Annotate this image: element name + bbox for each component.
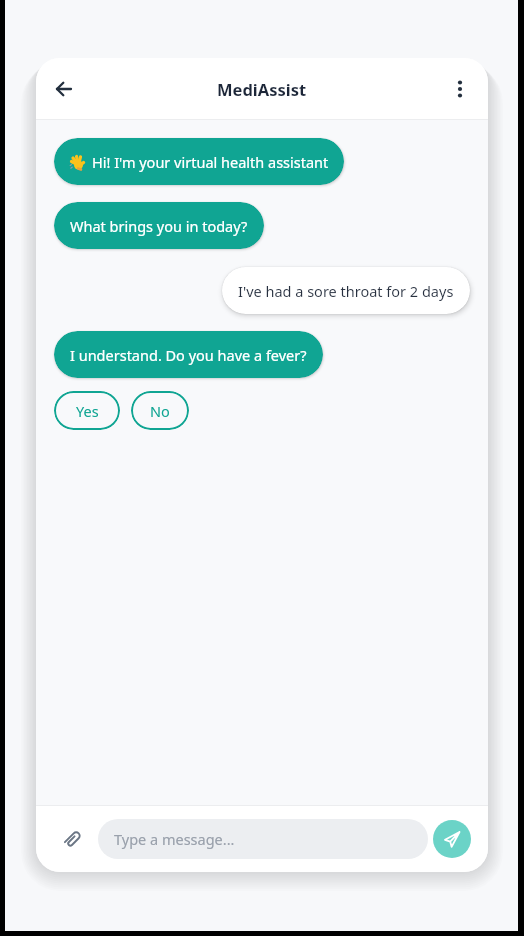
button[interactable]	[433, 820, 471, 858]
staticText: Type a message...	[114, 829, 235, 849]
button[interactable]: I've had a sore throat for 2 days	[222, 267, 470, 314]
button[interactable]	[448, 77, 472, 101]
staticText: I understand. Do you have a fever?	[70, 345, 307, 365]
button[interactable]	[60, 826, 86, 852]
button[interactable]: What brings you in today?	[54, 202, 264, 249]
staticText: Hi! I'm your virtual health assistant	[92, 152, 329, 172]
staticText: What brings you in today?	[70, 216, 248, 236]
staticText: MediAssist	[217, 78, 307, 100]
staticText: Yes	[76, 401, 99, 421]
button[interactable]: I understand. Do you have a fever?	[54, 331, 323, 378]
button[interactable]: No	[131, 391, 189, 430]
button[interactable]: Hi! I'm your virtual health assistant	[54, 138, 344, 185]
staticText: No	[150, 401, 170, 421]
staticText: I've had a sore throat for 2 days	[238, 281, 454, 301]
button[interactable]: Type a message...	[98, 819, 428, 859]
button[interactable]	[52, 77, 76, 101]
button[interactable]: Yes	[54, 391, 120, 430]
